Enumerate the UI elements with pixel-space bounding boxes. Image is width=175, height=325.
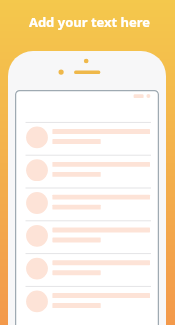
staticText: Add your text here [2, 13, 175, 31]
